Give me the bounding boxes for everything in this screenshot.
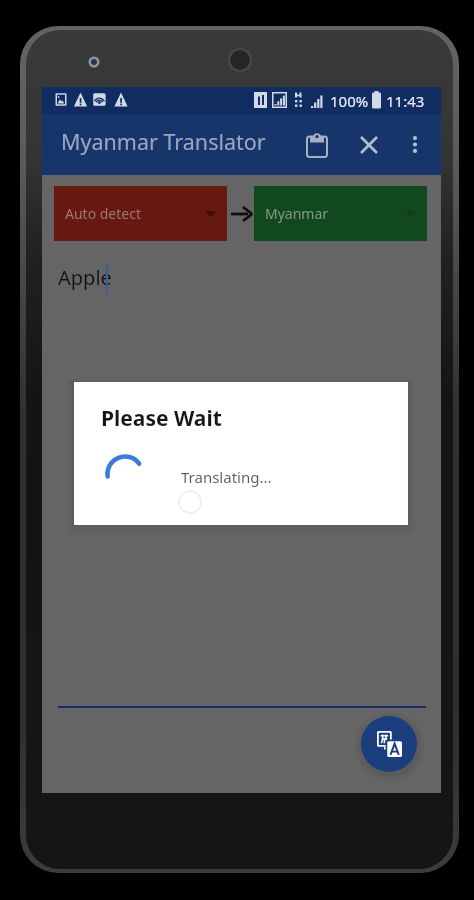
button[interactable]: Auto detect [54, 186, 227, 241]
staticText: Please Wait [101, 404, 222, 433]
staticText: Translating... [181, 467, 272, 487]
button[interactable]: Clear text [345, 121, 393, 169]
staticText: 11:43 [386, 91, 425, 111]
button[interactable]: More options [391, 120, 439, 168]
staticText: Auto detect [65, 204, 141, 223]
button[interactable]: Translate [361, 716, 417, 772]
staticText: 100% [330, 91, 369, 111]
staticText: Apple [58, 264, 112, 291]
button[interactable]: Paste from clipboard [293, 122, 341, 170]
staticText: Myanmar [265, 204, 329, 223]
staticText: Myanmar Translator [61, 127, 266, 156]
button[interactable]: Myanmar [254, 186, 427, 241]
